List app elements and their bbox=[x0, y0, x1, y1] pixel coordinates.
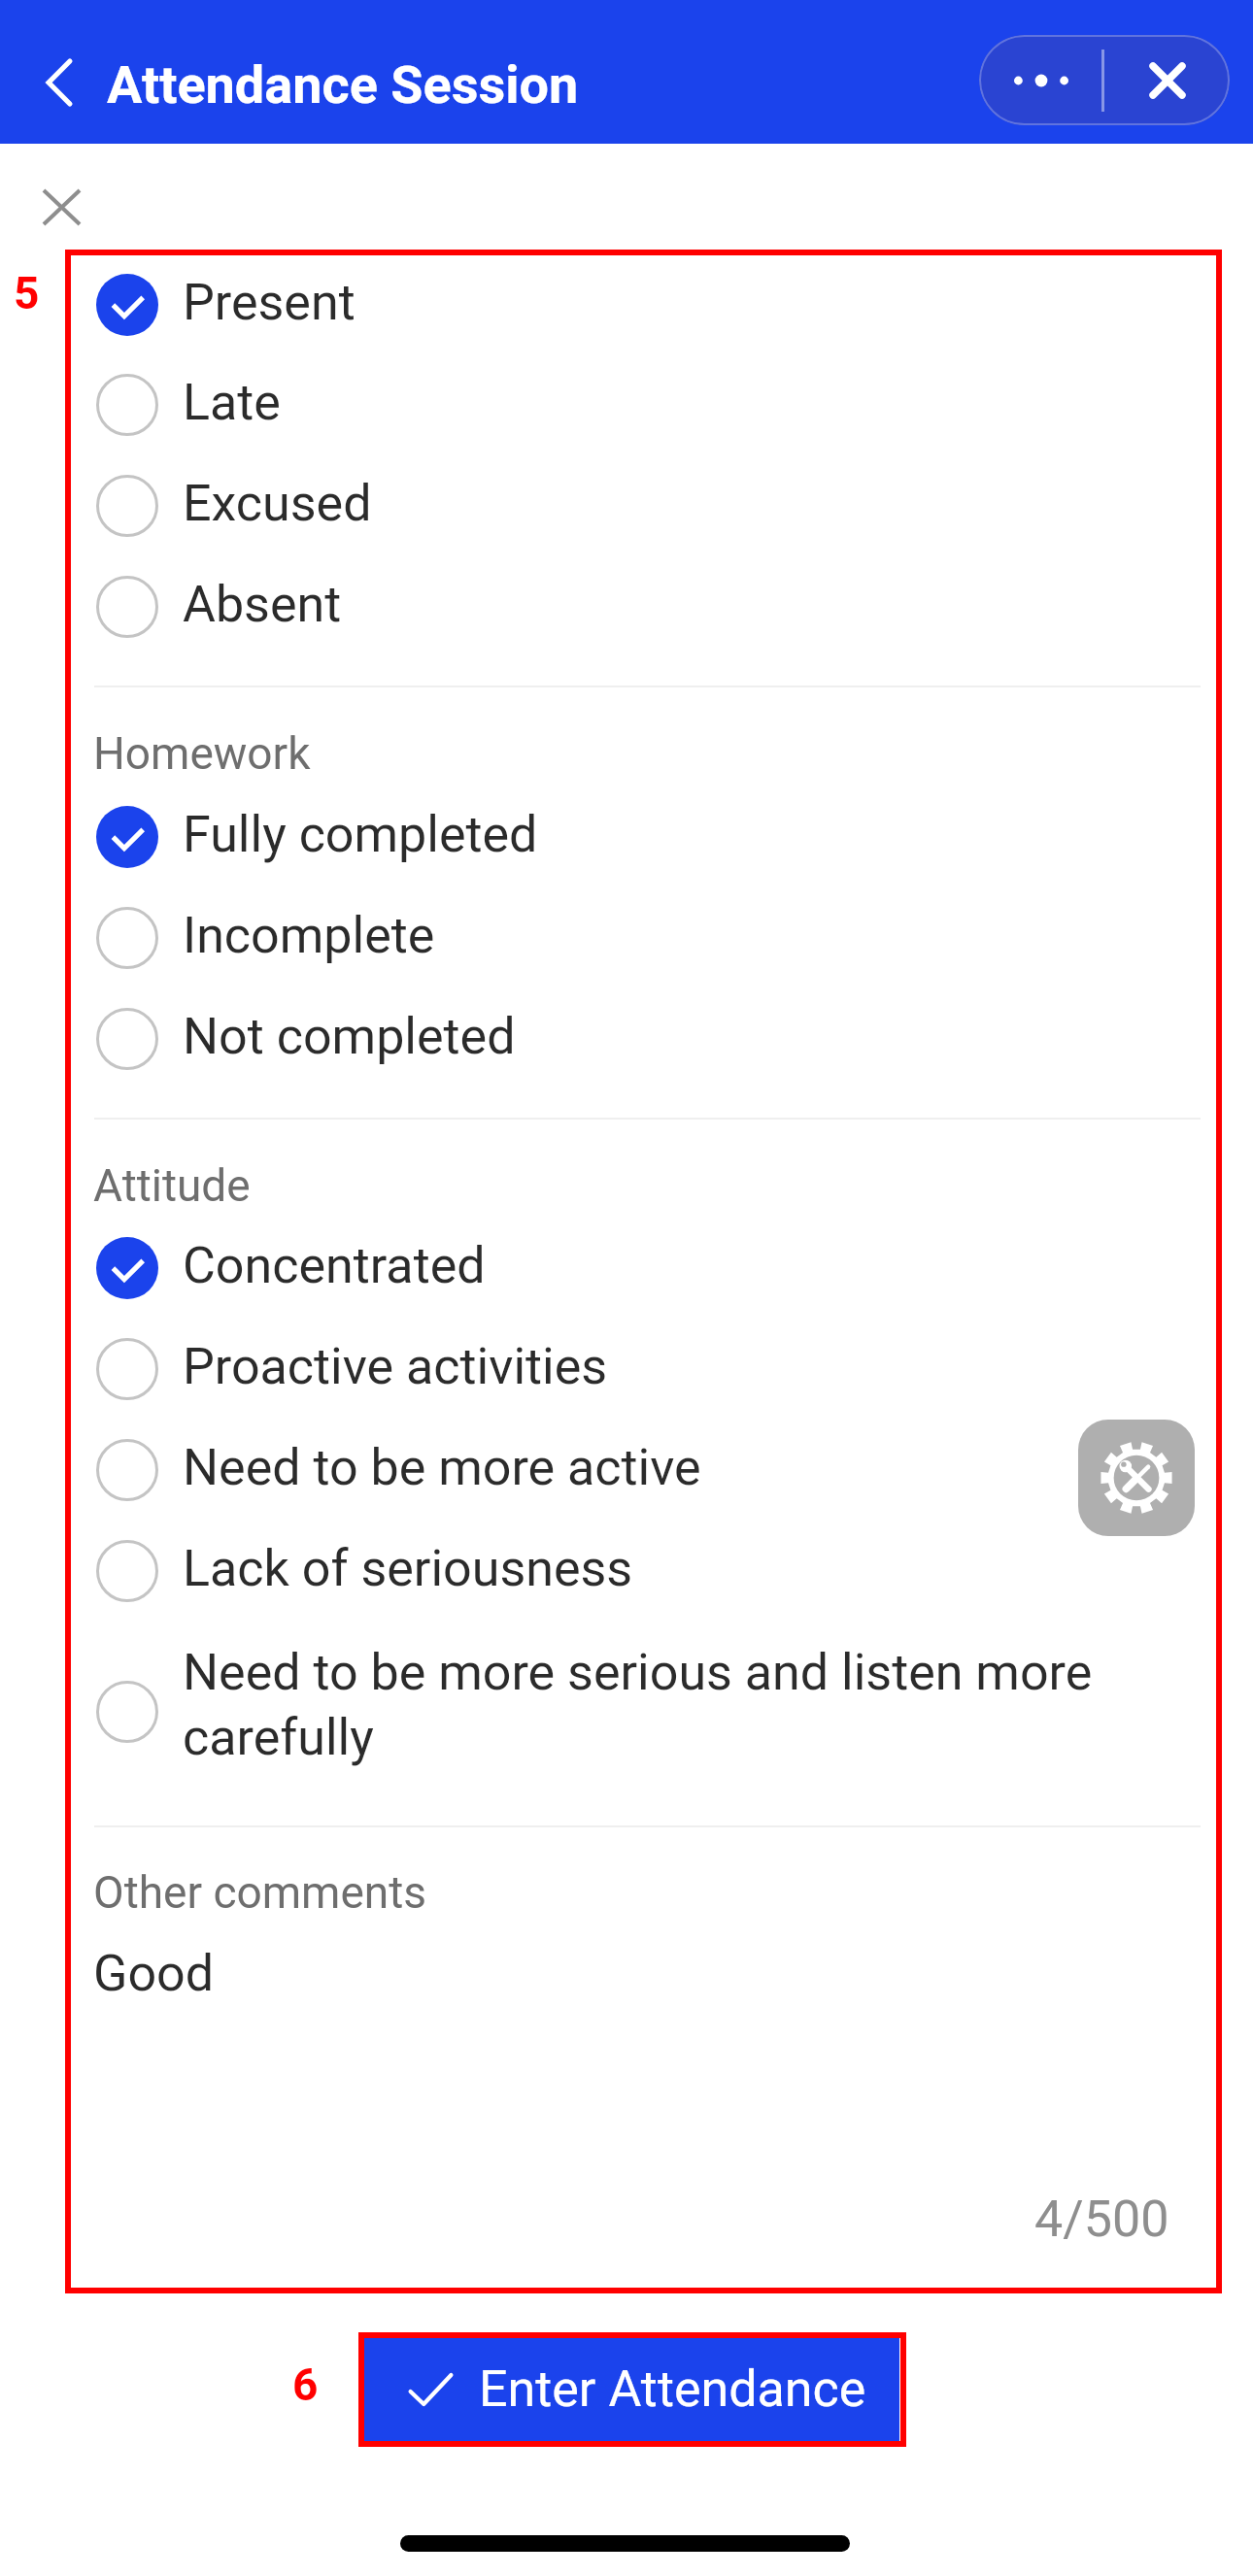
staticText: Other comments bbox=[93, 1866, 427, 1919]
button[interactable] bbox=[67, 455, 1222, 556]
button[interactable] bbox=[67, 786, 1222, 887]
button[interactable] bbox=[67, 1521, 1222, 1622]
staticText: Need to be more serious and listen more … bbox=[183, 1643, 1105, 1767]
button[interactable]: Close bbox=[1104, 35, 1230, 125]
button[interactable]: Developer tools bbox=[1078, 1420, 1195, 1536]
staticText: Not completed bbox=[183, 1007, 516, 1066]
staticText: Present bbox=[183, 273, 356, 332]
button[interactable] bbox=[67, 988, 1222, 1089]
staticText: Fully completed bbox=[183, 805, 538, 864]
button[interactable]: Enter Attendance bbox=[364, 2337, 899, 2441]
staticText: Proactive activities bbox=[183, 1337, 608, 1396]
staticText: Enter Attendance bbox=[479, 2359, 866, 2419]
button[interactable]: Back bbox=[25, 49, 93, 117]
staticText: 5 bbox=[14, 267, 40, 319]
button[interactable] bbox=[67, 254, 1222, 355]
button[interactable] bbox=[67, 887, 1222, 988]
staticText: Excused bbox=[183, 474, 372, 533]
staticText: Absent bbox=[183, 575, 342, 634]
staticText: Attitude bbox=[93, 1159, 251, 1212]
staticText: Good bbox=[93, 1944, 215, 2003]
staticText: Need to be more active bbox=[183, 1438, 701, 1497]
staticText: Homework bbox=[93, 727, 311, 780]
button[interactable] bbox=[67, 1218, 1222, 1319]
staticText: 4/500 bbox=[1034, 2190, 1169, 2249]
button[interactable]: More options bbox=[979, 35, 1102, 125]
staticText: 6 bbox=[292, 2359, 319, 2411]
staticText: Concentrated bbox=[183, 1236, 486, 1295]
button[interactable] bbox=[67, 1319, 1222, 1420]
staticText: Lack of seriousness bbox=[183, 1539, 633, 1598]
button[interactable] bbox=[67, 1643, 1222, 1781]
staticText: Incomplete bbox=[183, 906, 435, 965]
button[interactable] bbox=[67, 556, 1222, 657]
staticText: Attendance Session bbox=[107, 54, 579, 116]
button[interactable]: Dismiss bbox=[23, 169, 99, 245]
button[interactable] bbox=[67, 354, 1222, 455]
button[interactable] bbox=[67, 1420, 1222, 1521]
staticText: Late bbox=[183, 373, 281, 432]
